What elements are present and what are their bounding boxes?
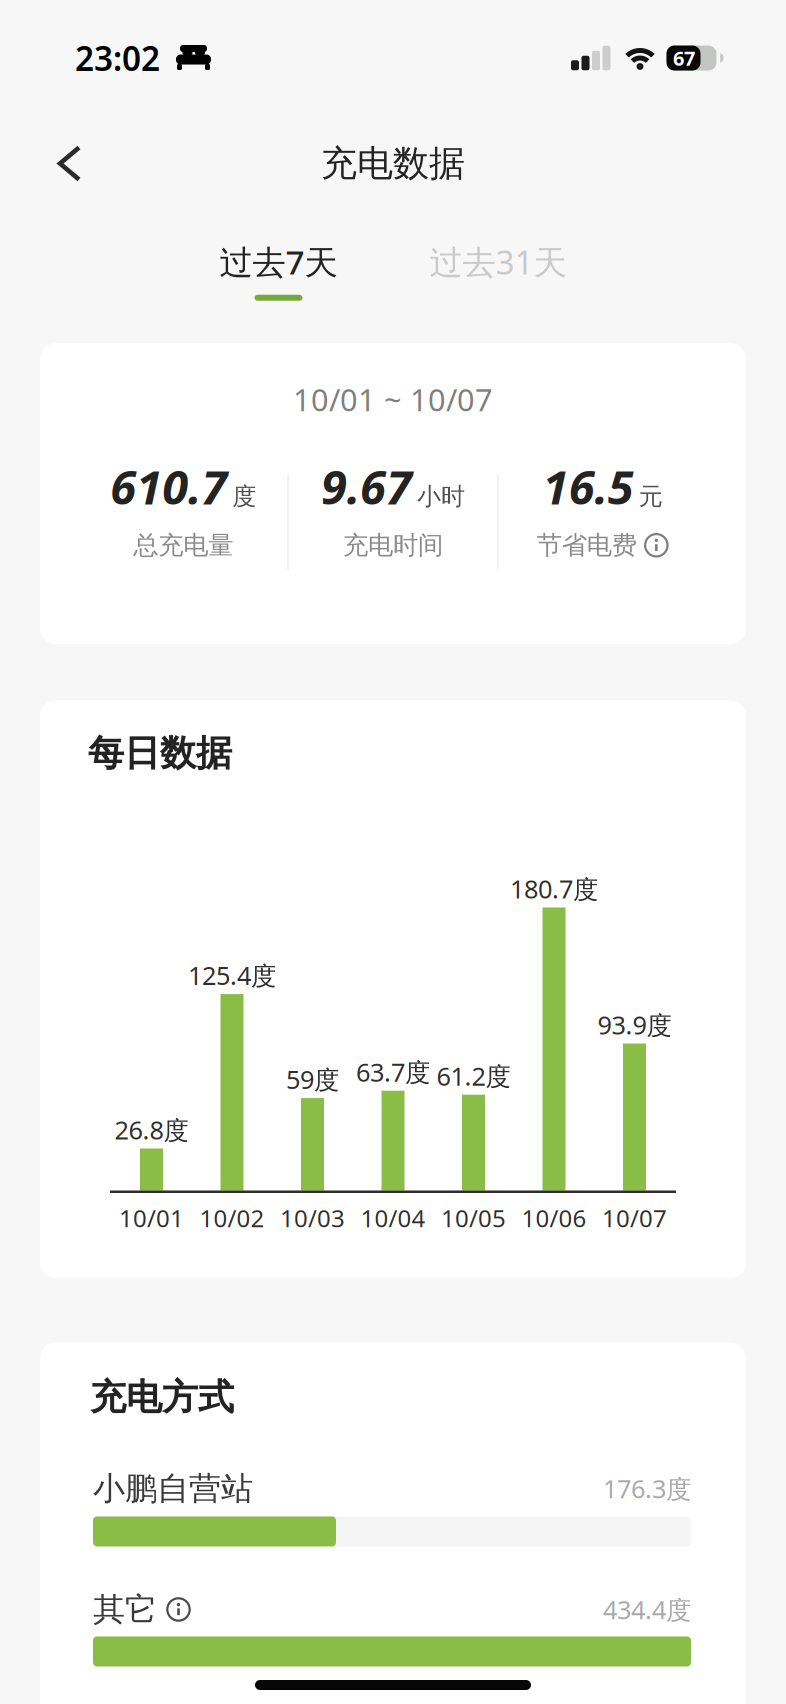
staticText: 10/05 [441, 1202, 506, 1234]
staticText: 小鹏自营站 [93, 1469, 253, 1508]
staticText: 9.67 [321, 454, 412, 518]
staticText: 充电数据 [321, 141, 465, 186]
staticText: 10/06 [521, 1202, 586, 1234]
staticText: 充电方式 [90, 1375, 234, 1419]
staticText: 176.3度 [603, 1472, 691, 1505]
staticText: 93.9度 [597, 1008, 671, 1041]
staticText: 180.7度 [510, 872, 598, 905]
staticText: 充电时间 [343, 530, 443, 561]
staticText: 度 [232, 482, 256, 511]
staticText: 23:02 [75, 36, 160, 80]
staticText: 59度 [286, 1062, 339, 1096]
staticText: 10/04 [360, 1202, 425, 1234]
staticText: 10/02 [199, 1202, 264, 1234]
staticText: 26.8度 [114, 1113, 188, 1146]
staticText: 61.2度 [436, 1059, 510, 1093]
staticText: 10/01 [119, 1202, 184, 1234]
staticText: 67 [673, 45, 695, 71]
staticText: 每日数据 [88, 731, 232, 775]
staticText: 63.7度 [356, 1055, 430, 1089]
button[interactable]: 返回 [0, 145, 102, 182]
button[interactable]: 节省电费说明 [644, 533, 669, 558]
button[interactable]: 过去31天 [429, 239, 566, 301]
staticText: 其它 [93, 1590, 157, 1629]
staticText: 元 [639, 482, 663, 511]
staticText: 10/03 [280, 1202, 345, 1234]
staticText: 10/01 ~ 10/07 [293, 379, 493, 420]
staticText: 节省电费 [537, 530, 637, 561]
staticText: 125.4度 [188, 958, 276, 992]
staticText: 610.7 [110, 454, 227, 518]
staticText: 16.5 [543, 454, 634, 518]
button[interactable]: 其它充电方式说明 [157, 1597, 191, 1622]
staticText: 总充电量 [133, 530, 233, 561]
staticText: 434.4度 [603, 1593, 691, 1626]
button[interactable]: 过去7天 [219, 239, 337, 301]
staticText: 10/07 [602, 1202, 667, 1234]
staticText: 过去7天 [219, 239, 337, 284]
staticText: 过去31天 [429, 239, 566, 284]
staticText: 小时 [417, 482, 465, 511]
